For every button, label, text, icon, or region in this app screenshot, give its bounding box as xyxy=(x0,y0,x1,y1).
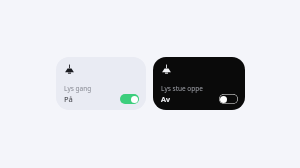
staticText: Lys gang xyxy=(64,84,92,93)
staticText: Av xyxy=(161,94,170,104)
button[interactable]: Lys gang xyxy=(56,57,146,110)
staticText: På xyxy=(64,94,73,104)
button[interactable]: Turn light on xyxy=(219,94,238,104)
button[interactable]: Lys stue oppe xyxy=(153,57,245,110)
button[interactable]: Turn light off xyxy=(120,94,139,104)
staticText: Lys stue oppe xyxy=(161,84,203,93)
